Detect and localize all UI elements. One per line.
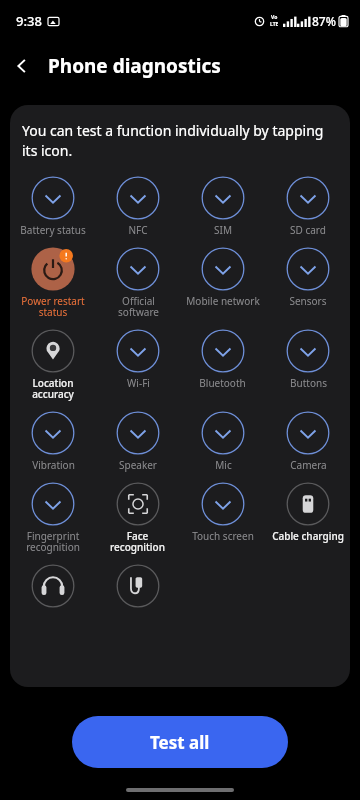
staticText: 9:38 xyxy=(16,12,42,30)
button[interactable]: Power restart status xyxy=(19,247,87,319)
staticText: Battery status xyxy=(20,223,86,237)
button[interactable]: Location accuracy xyxy=(29,329,77,401)
staticText: Official software xyxy=(118,294,159,319)
button[interactable]: Official software xyxy=(114,247,162,319)
staticText: Test all xyxy=(150,731,210,754)
other: Headphones xyxy=(31,564,75,608)
button[interactable]: USB cable xyxy=(114,564,162,608)
staticText: Cable charging xyxy=(272,529,344,543)
staticText: LTE xyxy=(270,21,279,28)
button[interactable]: Vibration xyxy=(29,411,77,472)
button[interactable]: Cable charging xyxy=(270,482,346,543)
staticText: Vo xyxy=(271,14,278,21)
staticText: Touch screen xyxy=(192,529,254,543)
button[interactable]: SIM xyxy=(199,176,247,237)
button[interactable]: Fingerprint recognition xyxy=(24,482,82,554)
button[interactable]: Face recognition xyxy=(108,482,167,554)
staticText: Vibration xyxy=(32,458,75,472)
button[interactable]: NFC xyxy=(114,176,162,237)
staticText: SIM xyxy=(214,223,232,237)
staticText: Face recognition xyxy=(110,529,165,554)
other: USB cable xyxy=(116,564,160,608)
staticText: You can test a function individually by … xyxy=(22,121,338,160)
staticText: Phone diagnostics xyxy=(48,53,221,79)
staticText: Camera xyxy=(290,458,327,472)
staticText: Mobile network xyxy=(186,294,260,308)
button[interactable]: Sensors xyxy=(284,247,332,308)
button[interactable]: Bluetooth xyxy=(197,329,248,390)
button[interactable]: Battery status xyxy=(18,176,88,237)
button[interactable]: Mic xyxy=(199,411,247,472)
staticText: Mic xyxy=(215,458,232,472)
staticText: SD card xyxy=(290,223,326,237)
staticText: Wi-Fi xyxy=(127,376,150,390)
staticText: Power restart status xyxy=(21,294,85,319)
button[interactable]: Speaker xyxy=(114,411,162,472)
button[interactable]: Test all xyxy=(72,716,288,768)
staticText: 87% xyxy=(312,13,336,29)
button[interactable]: Mobile network xyxy=(184,247,262,308)
staticText: Bluetooth xyxy=(199,376,246,390)
staticText: Fingerprint recognition xyxy=(26,529,80,554)
button[interactable]: Headphones xyxy=(29,564,77,608)
button[interactable]: Buttons xyxy=(284,329,332,390)
staticText: NFC xyxy=(128,223,148,237)
button[interactable]: Wi-Fi xyxy=(114,329,162,390)
button[interactable]: SD card xyxy=(284,176,332,237)
staticText: Sensors xyxy=(289,294,327,308)
staticText: Speaker xyxy=(119,458,157,472)
button[interactable]: Camera xyxy=(284,411,332,472)
button[interactable]: Back xyxy=(0,44,44,88)
staticText: Location accuracy xyxy=(32,376,74,401)
staticText: Buttons xyxy=(290,376,327,390)
button[interactable]: Touch screen xyxy=(190,482,256,543)
